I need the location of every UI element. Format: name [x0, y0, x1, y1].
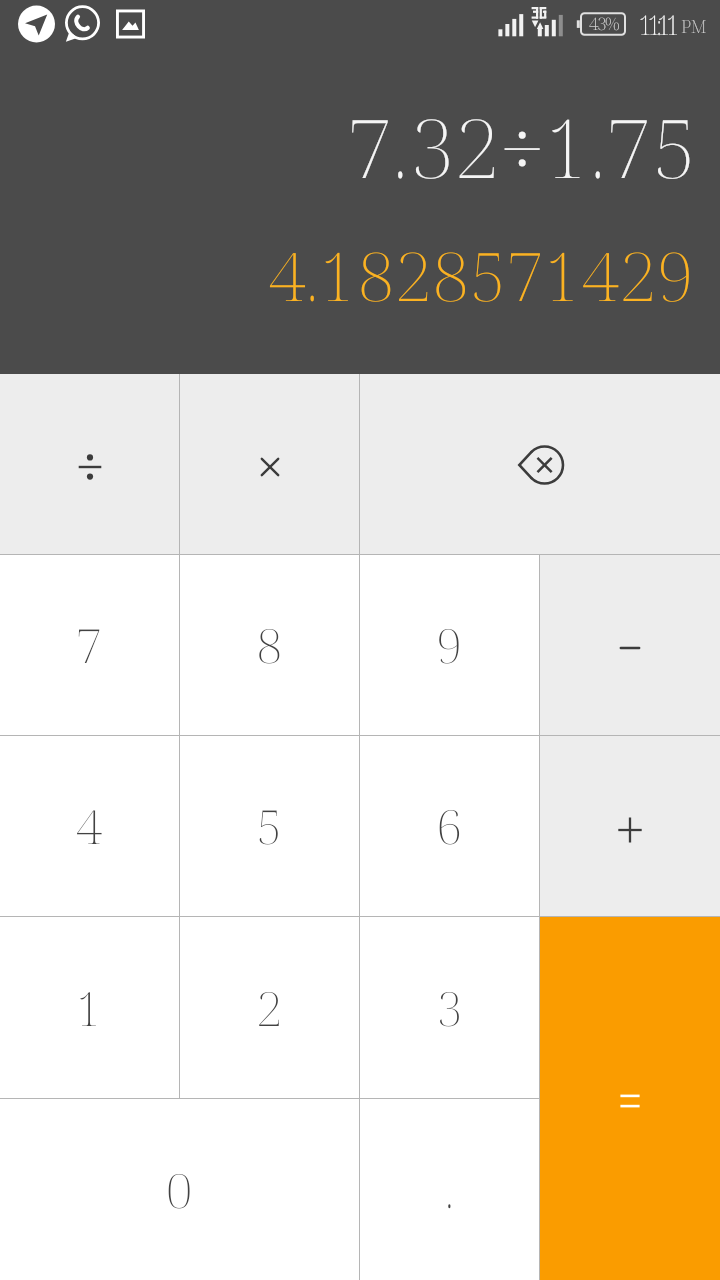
- staticText: 4.1828571429: [268, 229, 694, 320]
- staticText: 7: [76, 613, 103, 677]
- button[interactable]: 1: [0, 917, 179, 1098]
- staticText: 7.32÷1.75: [347, 91, 697, 201]
- button[interactable]: 2: [180, 917, 359, 1098]
- button[interactable]: 4: [0, 736, 179, 916]
- button[interactable]: Plus: [540, 736, 720, 916]
- button[interactable]: 7: [0, 555, 179, 735]
- button[interactable]: 5: [180, 736, 359, 916]
- staticText: 0: [166, 1158, 193, 1222]
- button[interactable]: 6: [360, 736, 539, 916]
- button[interactable]: Divide: [0, 374, 179, 554]
- staticText: 5: [256, 794, 283, 858]
- staticText: 6: [436, 794, 463, 858]
- button[interactable]: Backspace: [360, 374, 720, 554]
- staticText: PM: [681, 14, 707, 39]
- staticText: 3: [436, 976, 463, 1040]
- button[interactable]: 8: [180, 555, 359, 735]
- button[interactable]: Minus: [540, 555, 720, 735]
- staticText: 1: [76, 976, 103, 1040]
- button[interactable]: 9: [360, 555, 539, 735]
- button[interactable]: 3: [360, 917, 539, 1098]
- button[interactable]: Equals: [540, 917, 720, 1280]
- staticText: 4: [76, 794, 103, 858]
- button[interactable]: Multiply: [180, 374, 359, 554]
- staticText: 11:11: [638, 6, 675, 43]
- button[interactable]: 0: [0, 1099, 359, 1280]
- staticText: 9: [436, 613, 463, 677]
- staticText: 8: [256, 613, 283, 677]
- staticText: .: [445, 1158, 455, 1222]
- staticText: 43%: [589, 12, 619, 35]
- staticText: 2: [256, 976, 283, 1040]
